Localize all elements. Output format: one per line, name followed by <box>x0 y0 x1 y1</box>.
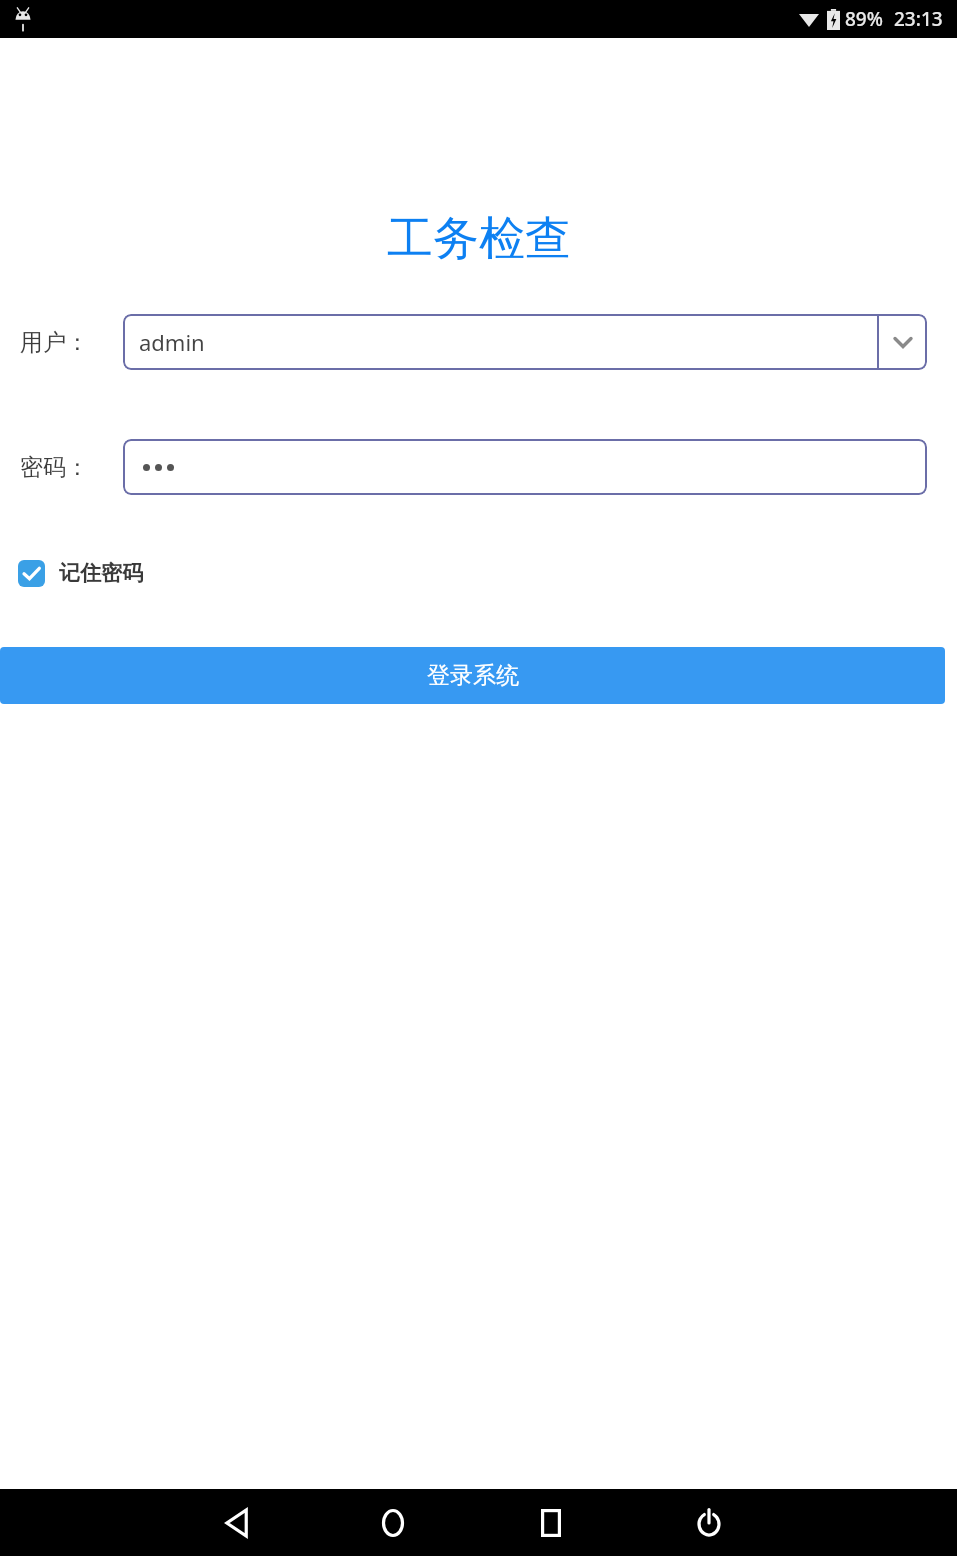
staticText: 23:13 <box>894 6 943 32</box>
button[interactable]: 记住密码 <box>18 556 143 590</box>
staticText: 记住密码 <box>59 560 143 586</box>
button[interactable]: Home <box>368 1498 418 1548</box>
button[interactable]: admin <box>123 314 927 370</box>
staticText: 登录系统 <box>427 661 519 690</box>
staticText: 用户： <box>20 328 89 357</box>
staticText: 89% <box>845 6 883 32</box>
staticText: 工务检查 <box>387 210 571 268</box>
staticText: admin <box>139 327 205 357</box>
button[interactable]: Recent apps <box>526 1498 576 1548</box>
button[interactable]: Power <box>684 1498 734 1548</box>
staticText: 密码： <box>20 453 89 482</box>
button[interactable]: Back <box>212 1498 262 1548</box>
button[interactable] <box>123 439 927 495</box>
button[interactable]: 登录系统 <box>0 647 945 704</box>
button[interactable]: Select user <box>879 314 927 370</box>
